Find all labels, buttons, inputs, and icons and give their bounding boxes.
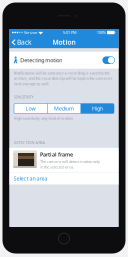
button[interactable]: Medium [47,103,80,113]
staticText: Notifications will be sent once a record… [13,70,112,86]
staticText: The camera will detect motion only in th… [40,159,100,169]
staticText: Low [25,105,35,112]
staticText: High sensitivity: any kind of motion [13,115,72,121]
staticText: Verizon [24,30,37,35]
button[interactable]: Low [14,103,47,113]
staticText: Detecting motion [20,57,62,64]
button[interactable]: Back [9,36,34,48]
staticText: Back [17,38,32,47]
staticText: Partial frame [40,151,73,158]
staticText: SENSITIVITY [13,94,33,99]
staticText: High [92,105,103,112]
staticText: Motion [52,38,75,47]
staticText: 100% [97,30,106,35]
staticText: DETECTION AREA [13,140,45,145]
staticText: 5:01 PM [63,30,77,35]
staticText: Medium [54,105,74,112]
button[interactable]: Detecting motion [102,56,115,64]
button[interactable]: Select an area [9,172,118,184]
button[interactable]: Partial frame [9,148,118,172]
button[interactable]: High [81,103,114,113]
staticText: Select an area [13,175,47,182]
